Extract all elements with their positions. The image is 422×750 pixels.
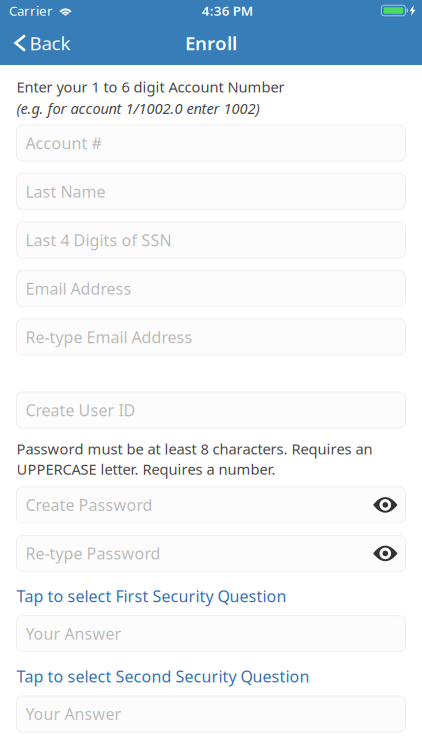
staticText: Last 4 Digits of SSN bbox=[25, 229, 171, 250]
button[interactable]: Tap to select First Security Question bbox=[16, 585, 286, 607]
staticText: Password must be at least 8 characters. … bbox=[16, 439, 372, 458]
button[interactable]: Tap to select Second Security Question bbox=[16, 666, 309, 687]
staticText: Tap to select Second Security Question bbox=[16, 666, 309, 687]
button[interactable]: Last 4 Digits of SSN bbox=[16, 222, 405, 258]
button[interactable]: Your Answer bbox=[16, 696, 405, 732]
button[interactable]: Create User ID bbox=[16, 392, 405, 428]
staticText: 4:36 PM bbox=[202, 2, 253, 19]
button[interactable]: Last Name bbox=[16, 173, 405, 209]
staticText: Re-type Password bbox=[25, 543, 160, 564]
staticText: Your Answer bbox=[25, 703, 121, 724]
staticText: Account # bbox=[25, 132, 101, 153]
button[interactable]: Re-type Email Address bbox=[16, 319, 405, 355]
button[interactable]: Email Address bbox=[16, 270, 405, 306]
staticText: Enter your 1 to 6 digit Account Number bbox=[16, 77, 284, 96]
staticText: Your Answer bbox=[25, 623, 121, 644]
button[interactable]: Re-type Password bbox=[16, 535, 405, 571]
staticText: Re-type Email Address bbox=[25, 326, 192, 347]
staticText: Enroll bbox=[185, 31, 237, 55]
button[interactable]: Account # bbox=[16, 125, 405, 161]
button[interactable]: Create Password bbox=[16, 487, 405, 523]
staticText: Carrier bbox=[9, 2, 53, 19]
button[interactable]: Back bbox=[0, 23, 70, 63]
staticText: (e.g. for account 1/1002.0 enter 1002) bbox=[16, 98, 259, 118]
staticText: UPPERCASE letter. Requires a number. bbox=[16, 459, 275, 479]
staticText: Back bbox=[29, 31, 70, 55]
staticText: Tap to select First Security Question bbox=[16, 585, 286, 607]
staticText: Create User ID bbox=[25, 399, 135, 420]
staticText: Email Address bbox=[25, 278, 131, 299]
staticText: Create Password bbox=[25, 494, 152, 515]
button[interactable]: Your Answer bbox=[16, 616, 405, 652]
staticText: Last Name bbox=[25, 181, 105, 202]
